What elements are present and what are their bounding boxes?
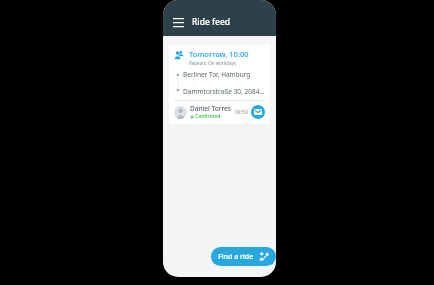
staticText: 09:50 [235,109,248,116]
button[interactable]: Find a ride [211,247,276,266]
staticText: Berliner Tor, Hamburg [183,70,251,79]
button[interactable]: Open navigation menu [170,14,186,30]
staticText: Daniel Torres [190,104,231,113]
staticText: Find a ride [218,252,254,262]
staticText: Tomorrow, 10:00 [189,49,249,59]
button[interactable]: Message Daniel Torres [251,105,265,119]
button[interactable]: Tomorrow, 10:00 [169,45,270,124]
staticText: Repeats: On workdays [189,60,237,66]
staticText: Confirmed [195,113,221,120]
staticText: Dammtorstraße 30, 20845 Ham… [183,87,265,96]
staticText: Ride feed [192,16,231,28]
